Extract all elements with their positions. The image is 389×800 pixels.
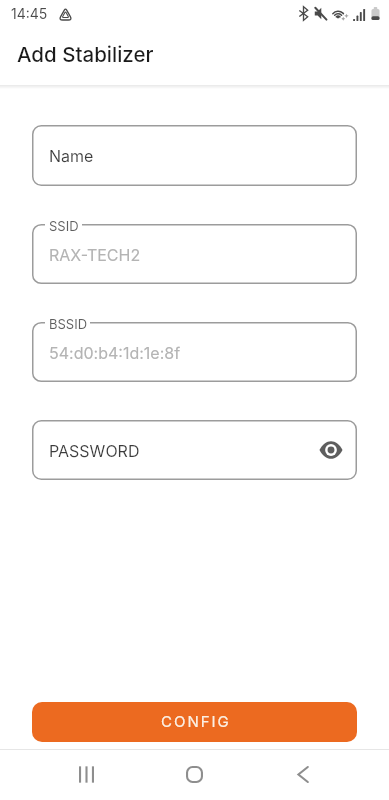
staticText: Add Stabilizer bbox=[17, 42, 154, 67]
staticText: Name bbox=[49, 146, 94, 165]
staticText: 14:45 bbox=[11, 5, 48, 22]
staticText: PASSWORD bbox=[49, 441, 140, 460]
button[interactable]: PASSWORD bbox=[32, 420, 357, 480]
button[interactable]: Show password bbox=[314, 435, 344, 465]
staticText: SSID bbox=[49, 218, 79, 234]
button[interactable]: CONFIG bbox=[32, 702, 357, 742]
staticText: 54:d0:b4:1d:1e:8f bbox=[49, 343, 181, 362]
button[interactable]: SSID bbox=[32, 224, 357, 284]
button[interactable]: Recent apps bbox=[58, 751, 114, 799]
staticText: CONFIG bbox=[161, 712, 231, 730]
button[interactable]: Name bbox=[32, 125, 357, 186]
button[interactable]: BSSID bbox=[32, 322, 357, 382]
button[interactable]: Back bbox=[275, 751, 331, 799]
staticText: BSSID bbox=[49, 316, 88, 332]
staticText: RAX-TECH2 bbox=[49, 245, 141, 264]
button[interactable]: Home bbox=[166, 751, 222, 799]
